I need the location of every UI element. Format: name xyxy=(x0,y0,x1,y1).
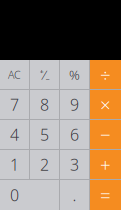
staticText: 5 xyxy=(40,124,49,145)
staticText: . xyxy=(72,184,76,206)
button[interactable]: 7 xyxy=(0,90,29,119)
staticText: 9 xyxy=(70,94,79,115)
staticText: 1 xyxy=(10,154,19,175)
staticText: 8 xyxy=(40,94,49,115)
button[interactable]: × xyxy=(90,90,121,119)
button[interactable]: + xyxy=(90,150,121,179)
staticText: ⁺⁄₋ xyxy=(39,66,49,83)
button[interactable]: 3 xyxy=(60,150,89,179)
button[interactable]: % xyxy=(60,60,89,89)
button[interactable]: 4 xyxy=(0,120,29,149)
staticText: 3 xyxy=(70,154,79,175)
staticText: 2 xyxy=(40,154,49,175)
staticText: + xyxy=(100,152,111,177)
button[interactable]: 1 xyxy=(0,150,29,179)
button[interactable]: ÷ xyxy=(90,60,121,89)
button[interactable]: 9 xyxy=(60,90,89,119)
button[interactable]: = xyxy=(90,180,121,210)
button[interactable]: . xyxy=(60,180,89,210)
staticText: − xyxy=(100,122,111,147)
button[interactable]: 6 xyxy=(60,120,89,149)
staticText: = xyxy=(100,183,111,207)
button[interactable]: 5 xyxy=(30,120,59,149)
button[interactable]: 8 xyxy=(30,90,59,119)
button[interactable]: − xyxy=(90,120,121,149)
staticText: ÷ xyxy=(100,62,111,87)
button[interactable]: AC xyxy=(0,60,29,89)
button[interactable]: ⁺⁄₋ xyxy=(30,60,59,89)
staticText: × xyxy=(100,92,111,117)
staticText: 4 xyxy=(10,124,19,145)
button[interactable]: 2 xyxy=(30,150,59,179)
staticText: 6 xyxy=(70,124,79,145)
button[interactable]: 0 xyxy=(0,180,59,210)
staticText: % xyxy=(69,66,80,83)
staticText: AC xyxy=(8,67,21,82)
staticText: 7 xyxy=(10,94,19,115)
staticText: 0 xyxy=(10,184,19,206)
